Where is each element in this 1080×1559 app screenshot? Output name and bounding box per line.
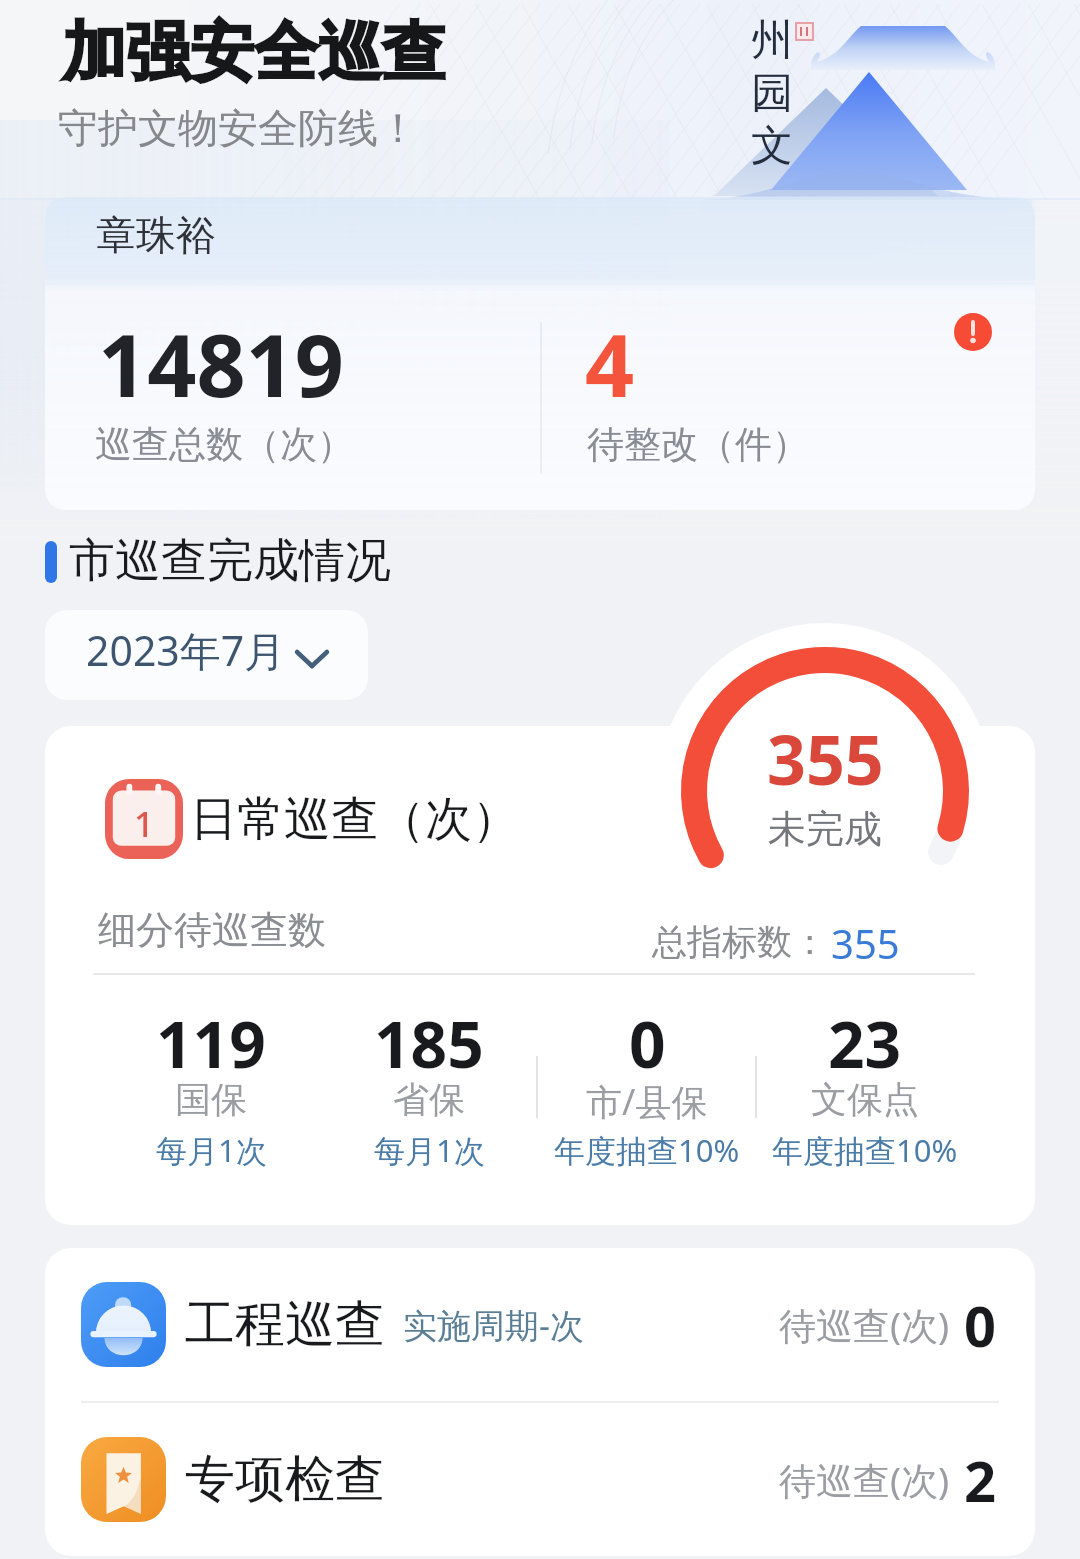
staticText: 2 (964, 1442, 997, 1518)
button[interactable]: 1 (45, 726, 1035, 1225)
staticText: 年度抽查10% (772, 1129, 958, 1171)
staticText: 文 (751, 120, 793, 173)
staticText: 185 (374, 1000, 484, 1087)
staticText: 14819 (98, 305, 344, 422)
button[interactable]: 工程巡查 (45, 1248, 1035, 1401)
staticText: 市/县保 (586, 1077, 708, 1126)
staticText: 细分待巡查数 (98, 906, 326, 954)
staticText: 355 (767, 712, 884, 805)
button[interactable]: 2023年7月 (45, 610, 368, 700)
staticText: 巡查总数（次） (95, 421, 354, 468)
button[interactable]: 待整改提醒 (954, 313, 992, 351)
staticText: 守护文物安全防线！ (58, 103, 418, 153)
staticText: 章珠裕 (96, 210, 216, 260)
staticText: 州 (751, 14, 793, 67)
staticText: 加强安全巡查 (62, 12, 446, 93)
staticText: 0 (629, 1000, 666, 1087)
staticText: 355 (831, 916, 900, 970)
staticText: 总指标数： (652, 920, 827, 964)
staticText: 工程巡查 (185, 1293, 385, 1356)
staticText: 市巡查完成情况 (69, 532, 391, 590)
staticText: 实施周期-次 (403, 1302, 584, 1348)
staticText: 待巡查(次) (779, 1299, 950, 1350)
staticText: 待巡查(次) (779, 1454, 950, 1505)
staticText: 1 (134, 800, 155, 848)
staticText: 日常巡查（次） (190, 790, 519, 849)
button[interactable]: 专项检查 (45, 1403, 1035, 1556)
staticText: 省保 (393, 1077, 465, 1122)
staticText: 专项检查 (185, 1448, 385, 1511)
staticText: 园 (751, 67, 793, 120)
staticText: 待整改（件） (587, 421, 809, 468)
staticText: 每月1次 (156, 1129, 267, 1171)
staticText: 年度抽查10% (554, 1129, 740, 1171)
staticText: 4 (585, 305, 635, 422)
staticText: 119 (156, 1000, 266, 1087)
staticText: 23 (828, 1000, 902, 1087)
staticText: 0 (964, 1287, 997, 1363)
staticText: 未完成 (768, 805, 882, 853)
button[interactable]: 章珠裕 巡查总数 14819 次，待整改 4 件 (45, 197, 1035, 510)
staticText: 国保 (175, 1077, 247, 1122)
staticText: 每月1次 (374, 1129, 485, 1171)
staticText: 文保点 (811, 1077, 919, 1122)
staticText: 2023年7月 (86, 622, 286, 678)
